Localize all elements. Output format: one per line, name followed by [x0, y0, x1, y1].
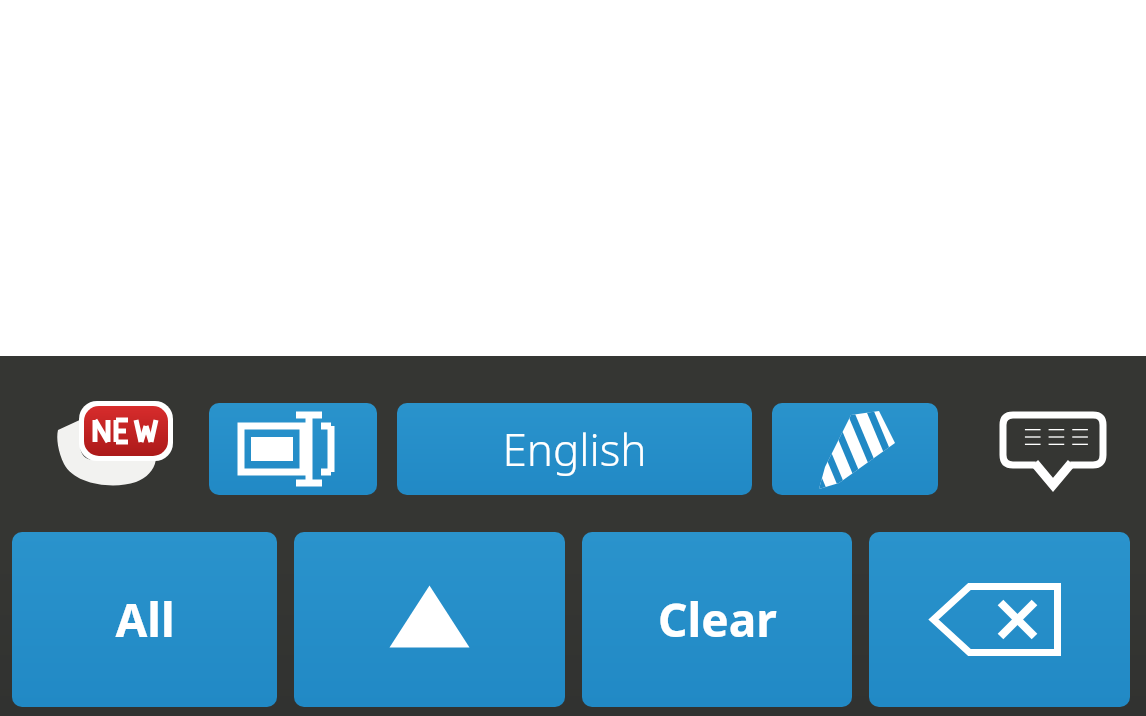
- button[interactable]: Hide keyboard: [990, 403, 1116, 495]
- button[interactable]: Backspace: [869, 532, 1130, 707]
- staticText: All: [115, 588, 175, 651]
- button[interactable]: What's new: [40, 396, 180, 492]
- button[interactable]: Input field options: [209, 403, 377, 495]
- button[interactable]: All: [12, 532, 277, 707]
- button[interactable]: Clear: [582, 532, 852, 707]
- button[interactable]: English: [397, 403, 752, 495]
- button[interactable]: Shift: [294, 532, 565, 707]
- staticText: Clear: [658, 588, 777, 651]
- button[interactable]: Handwriting input: [772, 403, 938, 495]
- staticText: English: [502, 419, 647, 479]
